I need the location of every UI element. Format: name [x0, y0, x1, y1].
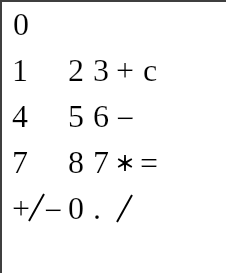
- button[interactable]: Zero: [62, 183, 87, 229]
- button[interactable]: Six: [87, 91, 111, 137]
- staticText: 7: [93, 144, 109, 179]
- button[interactable]: Decimal point: [87, 183, 111, 229]
- button[interactable]: Minus: [111, 91, 136, 137]
- staticText: +: [12, 190, 31, 225]
- staticText: −: [116, 100, 135, 135]
- staticText: 5: [68, 98, 84, 133]
- button[interactable]: Five: [62, 91, 87, 137]
- staticText: c: [143, 52, 158, 87]
- staticText: 1: [12, 52, 28, 87]
- button[interactable]: Clear: [136, 45, 164, 91]
- staticText: +: [116, 52, 135, 87]
- button[interactable]: Equals: [136, 137, 164, 183]
- staticText: 0: [68, 190, 84, 225]
- staticText: 8: [68, 144, 84, 179]
- button[interactable]: Three: [87, 45, 111, 91]
- staticText: 0: [13, 6, 29, 41]
- button[interactable]: Seven: [6, 137, 62, 183]
- staticText: 2: [68, 52, 84, 87]
- staticText: 3: [93, 52, 109, 87]
- button[interactable]: Multiply: [111, 137, 136, 183]
- staticText: 4: [12, 98, 28, 133]
- button[interactable]: One: [6, 45, 62, 91]
- staticText: 6: [93, 98, 109, 133]
- button[interactable]: Seven: [87, 137, 111, 183]
- button[interactable]: Plus: [111, 45, 136, 91]
- staticText: 7: [12, 144, 28, 179]
- button[interactable]: Eight: [62, 137, 87, 183]
- staticText: −: [44, 192, 63, 227]
- staticText: =: [140, 145, 159, 180]
- button[interactable]: Two: [62, 45, 87, 91]
- button[interactable]: Divide: [111, 183, 136, 229]
- staticText: .: [93, 190, 101, 225]
- button[interactable]: Four: [6, 91, 62, 137]
- button[interactable]: Plus or minus: [6, 183, 62, 229]
